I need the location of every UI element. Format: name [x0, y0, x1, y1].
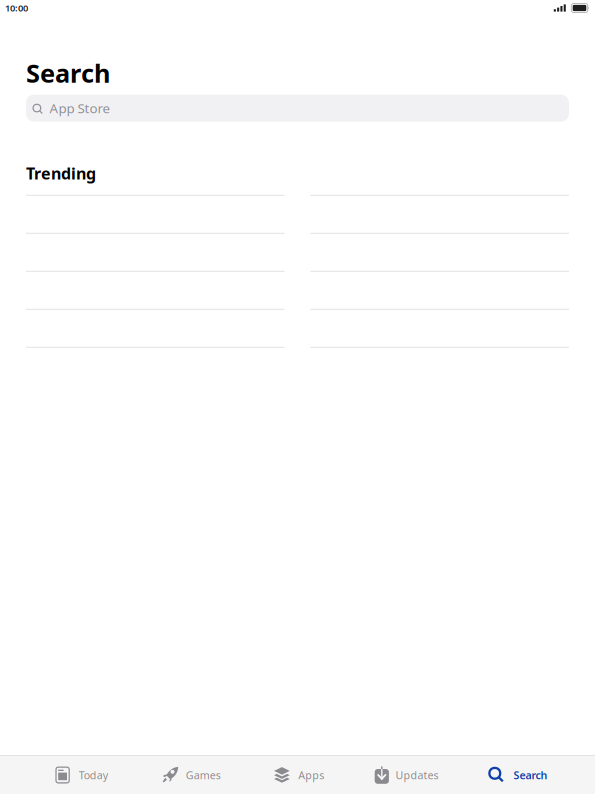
- staticText: App Store: [49, 99, 110, 117]
- button[interactable]: Today: [55, 756, 108, 794]
- staticText: Search: [513, 768, 547, 782]
- button[interactable]: App Store: [26, 95, 569, 122]
- button[interactable]: Trending search 3: [26, 271, 284, 309]
- staticText: Search: [26, 56, 110, 90]
- staticText: Trending: [26, 163, 96, 184]
- button[interactable]: Trending search 2: [26, 233, 284, 271]
- button[interactable]: Trending search 6: [310, 195, 569, 233]
- button[interactable]: Trending search 7: [310, 233, 569, 271]
- staticText: Apps: [298, 768, 324, 782]
- button[interactable]: Search: [488, 756, 547, 794]
- button[interactable]: Trending search 9: [310, 309, 569, 347]
- staticText: Today: [79, 768, 108, 782]
- staticText: Updates: [396, 768, 439, 782]
- button[interactable]: Updates: [374, 756, 439, 794]
- staticText: 10:00: [5, 2, 28, 14]
- button[interactable]: Trending search 8: [310, 271, 569, 309]
- button[interactable]: Games: [162, 756, 221, 794]
- button[interactable]: Trending search 4: [26, 309, 284, 347]
- staticText: Games: [186, 768, 221, 782]
- button[interactable]: Apps: [274, 756, 324, 794]
- button[interactable]: Trending search 1: [26, 195, 284, 233]
